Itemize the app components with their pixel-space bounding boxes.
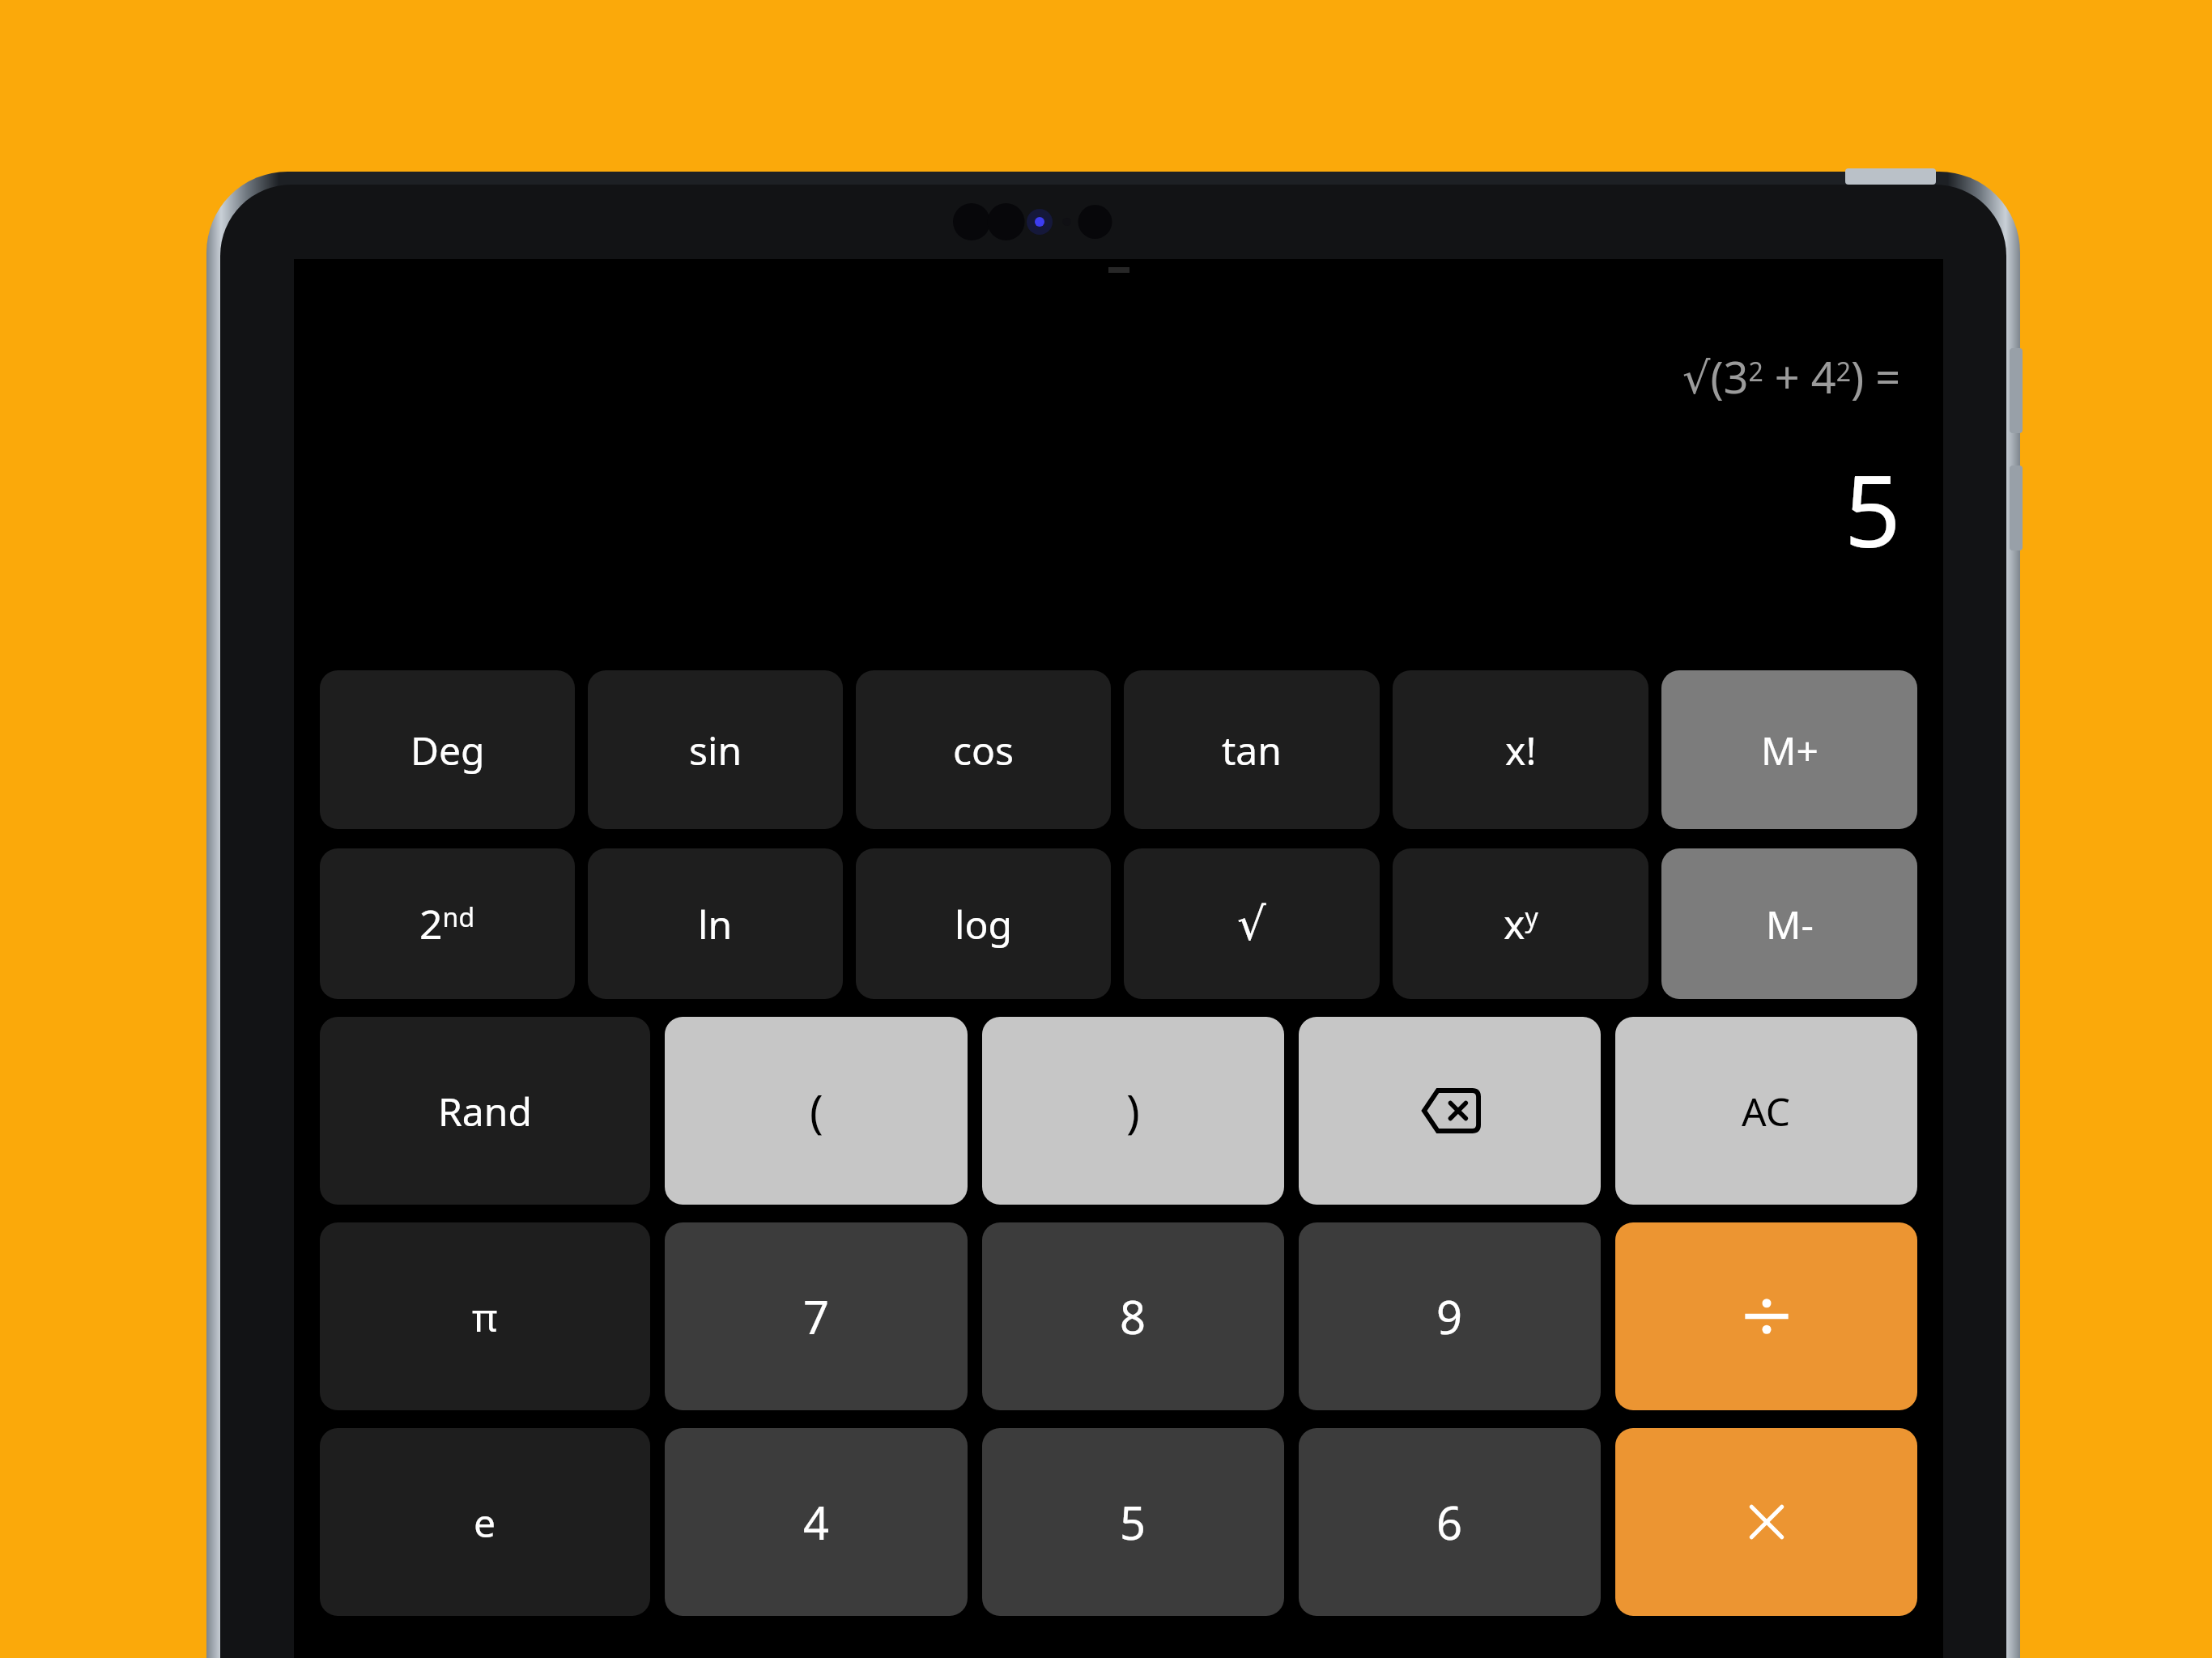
button[interactable]: xy: [1393, 848, 1648, 999]
button[interactable]: √: [1124, 848, 1380, 999]
button[interactable]: Rand: [320, 1017, 650, 1205]
staticText: 8: [1120, 1286, 1146, 1347]
staticText: 2nd: [419, 896, 475, 951]
staticText: 6: [1436, 1491, 1463, 1553]
button[interactable]: 5: [982, 1428, 1284, 1616]
button[interactable]: 7: [665, 1222, 968, 1410]
staticText: log: [955, 898, 1012, 950]
button[interactable]: log: [856, 848, 1111, 999]
button[interactable]: 9: [1299, 1222, 1601, 1410]
staticText: e: [474, 1496, 496, 1549]
button[interactable]: 4: [665, 1428, 968, 1616]
button[interactable]: M-: [1661, 848, 1917, 999]
staticText: (: [810, 1080, 823, 1141]
button[interactable]: 8: [982, 1222, 1284, 1410]
staticText: xy: [1504, 896, 1538, 951]
staticText: √: [1237, 898, 1266, 950]
staticText: 5: [1120, 1491, 1146, 1553]
staticText: 5: [1844, 442, 1901, 576]
button[interactable]: Multiply: [1615, 1428, 1917, 1616]
staticText: cos: [953, 724, 1015, 776]
button[interactable]: (: [665, 1017, 968, 1205]
staticText: M+: [1761, 724, 1819, 776]
button[interactable]: tan: [1124, 670, 1380, 829]
button[interactable]: M+: [1661, 670, 1917, 829]
staticText: tan: [1222, 724, 1282, 776]
staticText: ln: [698, 898, 733, 950]
staticText: 7: [803, 1286, 830, 1347]
staticText: π: [472, 1290, 498, 1343]
staticText: √(32 + 42) =: [1682, 346, 1901, 406]
staticText: Deg: [410, 724, 485, 776]
staticText: x!: [1505, 724, 1537, 776]
button[interactable]: cos: [856, 670, 1111, 829]
button[interactable]: Backspace: [1299, 1017, 1601, 1205]
staticText: Rand: [438, 1085, 532, 1137]
button[interactable]: 2nd: [320, 848, 575, 999]
staticText: 9: [1436, 1286, 1463, 1347]
staticText: M-: [1766, 898, 1814, 950]
staticText: 4: [803, 1491, 830, 1553]
button[interactable]: π: [320, 1222, 650, 1410]
button[interactable]: ln: [588, 848, 843, 999]
button[interactable]: 6: [1299, 1428, 1601, 1616]
staticText: sin: [689, 724, 742, 776]
staticText: AC: [1742, 1085, 1791, 1137]
button[interactable]: e: [320, 1428, 650, 1616]
button[interactable]: AC: [1615, 1017, 1917, 1205]
button[interactable]: Deg: [320, 670, 575, 829]
button[interactable]: ): [982, 1017, 1284, 1205]
button[interactable]: x!: [1393, 670, 1648, 829]
button[interactable]: Divide: [1615, 1222, 1917, 1410]
staticText: ): [1126, 1080, 1140, 1141]
button[interactable]: sin: [588, 670, 843, 829]
